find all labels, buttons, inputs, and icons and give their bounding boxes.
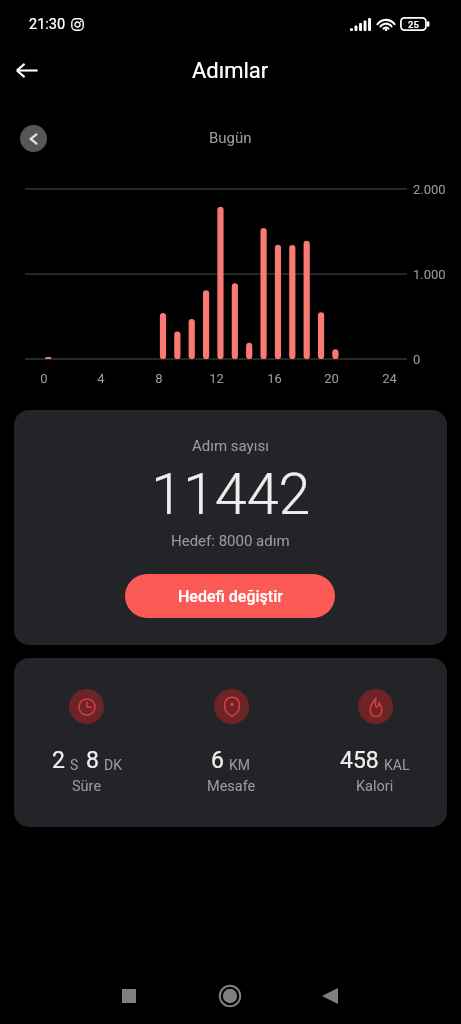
staticText: Adım sayısı bbox=[192, 437, 269, 455]
button[interactable]: Previous day bbox=[20, 125, 47, 152]
staticText: Mesafe bbox=[207, 778, 256, 795]
staticText: Hedefi değiştir bbox=[178, 587, 283, 606]
staticText: DK bbox=[104, 757, 122, 773]
staticText: Adımlar bbox=[192, 58, 269, 84]
staticText: 20 bbox=[324, 371, 339, 386]
staticText: 2 bbox=[52, 747, 65, 774]
staticText: 24 bbox=[382, 371, 397, 386]
staticText: 21:30 bbox=[29, 16, 66, 33]
staticText: 6 bbox=[211, 747, 224, 774]
staticText: Hedef: 8000 adım bbox=[171, 532, 290, 550]
button[interactable]: 458 bbox=[303, 689, 447, 795]
staticText: 4 bbox=[97, 371, 105, 386]
staticText: 16 bbox=[267, 371, 282, 386]
staticText: 0 bbox=[413, 352, 421, 367]
staticText: 458 bbox=[340, 747, 379, 774]
staticText: 0 bbox=[40, 371, 48, 386]
button[interactable]: Back bbox=[306, 972, 354, 1020]
staticText: 12 bbox=[209, 371, 224, 386]
staticText: 25 bbox=[408, 19, 419, 30]
staticText: Kalori bbox=[356, 778, 394, 795]
button[interactable]: Back bbox=[3, 47, 51, 93]
staticText: S bbox=[70, 757, 79, 773]
button[interactable]: 6 bbox=[159, 689, 303, 795]
button[interactable]: Home bbox=[206, 972, 254, 1020]
button[interactable]: 2 bbox=[14, 689, 159, 795]
staticText: Bugün bbox=[209, 129, 252, 147]
button[interactable]: Hedefi değiştir bbox=[125, 574, 335, 618]
button[interactable]: Recents bbox=[105, 972, 153, 1020]
staticText: 11442 bbox=[151, 461, 311, 528]
staticText: KM bbox=[229, 757, 251, 773]
staticText: 2.000 bbox=[413, 182, 446, 197]
staticText: 8 bbox=[86, 747, 99, 774]
staticText: KAL bbox=[384, 757, 410, 773]
staticText: 1.000 bbox=[413, 267, 446, 282]
staticText: Süre bbox=[72, 778, 102, 795]
staticText: 8 bbox=[155, 371, 163, 386]
